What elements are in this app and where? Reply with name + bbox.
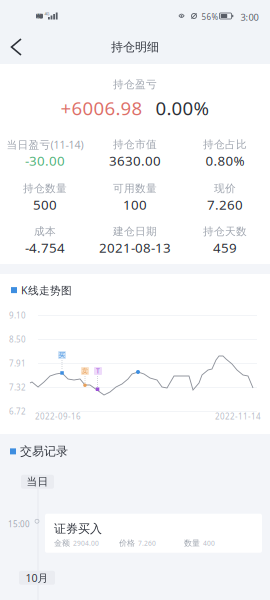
staticText: 400 xyxy=(203,539,215,548)
staticText: 2022-09-16 xyxy=(35,411,81,422)
staticText: 10月 xyxy=(25,571,48,585)
staticText: 6.72 xyxy=(9,406,26,417)
staticText: 持仓明细 xyxy=(111,40,159,54)
staticText: 金额 xyxy=(54,538,70,548)
staticText: +6006.98 xyxy=(60,96,142,120)
staticText: 56% xyxy=(201,11,218,22)
staticText: 证券买入 xyxy=(54,521,102,536)
staticText: 15:00 xyxy=(8,519,30,529)
staticText: 现价 xyxy=(214,182,236,195)
staticText: 8.50 xyxy=(9,334,26,345)
staticText: 价格 xyxy=(119,538,135,548)
staticText: 4G xyxy=(44,11,49,16)
staticText: 交易记录 xyxy=(20,444,68,459)
staticText: 2021-08-13 xyxy=(99,239,171,256)
staticText: 2022-11-14 xyxy=(215,411,261,422)
staticText: T xyxy=(96,367,100,375)
button[interactable]: Back xyxy=(0,32,34,62)
staticText: 当日盈亏(11-14) xyxy=(6,137,83,152)
staticText: 459 xyxy=(213,239,237,256)
staticText: 持仓盈亏 xyxy=(113,78,157,91)
staticText: HD xyxy=(36,9,42,23)
staticText: 7.91 xyxy=(9,358,26,369)
staticText: 建仓日期 xyxy=(113,225,157,238)
staticText: -4.754 xyxy=(25,239,65,256)
staticText: 持仓数量 xyxy=(23,182,67,195)
staticText: 持仓市值 xyxy=(113,138,157,151)
staticText: 500 xyxy=(33,196,57,213)
staticText: 0.00% xyxy=(155,96,209,120)
button[interactable]: 当日 xyxy=(21,475,54,489)
staticText: 100 xyxy=(123,196,147,213)
staticText: 数量 xyxy=(184,538,200,548)
staticText: K线走势图 xyxy=(21,283,72,297)
staticText: 3:00 xyxy=(240,11,258,23)
staticText: 7.260 xyxy=(138,539,156,548)
staticText: 成本 xyxy=(34,225,56,238)
staticText: 7.32 xyxy=(9,382,26,393)
staticText: 0.80% xyxy=(205,152,244,169)
staticText: 持仓占比 xyxy=(203,138,247,151)
staticText: 买 xyxy=(58,351,65,359)
staticText: 2904.00 xyxy=(73,539,99,548)
staticText: -30.00 xyxy=(25,152,65,169)
staticText: 持仓天数 xyxy=(203,225,247,238)
staticText: 7.260 xyxy=(207,196,243,213)
staticText: 9.10 xyxy=(9,310,26,321)
staticText: 卖 xyxy=(81,367,88,375)
staticText: 当日 xyxy=(26,475,48,488)
staticText: 3630.00 xyxy=(109,152,161,169)
staticText: 可用数量 xyxy=(113,182,157,195)
button[interactable]: 证券买入 xyxy=(45,514,262,553)
